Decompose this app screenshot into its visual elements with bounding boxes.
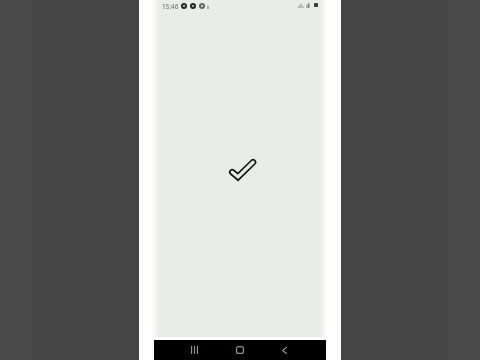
staticText: 15:46: [162, 2, 179, 11]
button[interactable]: Recent apps: [184, 340, 204, 360]
button[interactable]: Done: [229, 159, 255, 180]
button[interactable]: Back: [274, 340, 294, 360]
button[interactable]: Home: [230, 340, 250, 360]
